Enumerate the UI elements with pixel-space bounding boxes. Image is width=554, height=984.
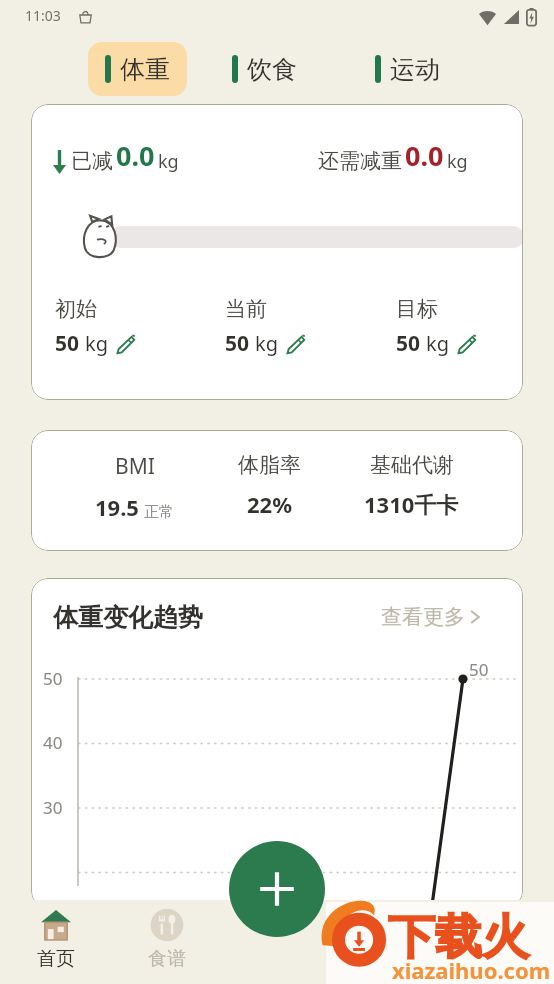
button[interactable]: 基础代谢 [364, 452, 459, 519]
button[interactable]: 体重 [88, 42, 187, 96]
staticText: 30 [43, 796, 63, 819]
staticText: 体脂率 [238, 452, 301, 478]
button[interactable]: 添加记录 [229, 841, 325, 937]
button[interactable]: 查看更多 [381, 604, 481, 630]
button[interactable]: BMI [95, 452, 174, 522]
staticText: 50 [55, 329, 80, 358]
staticText: 饮食 [247, 54, 297, 85]
staticText: 食谱 [148, 947, 186, 971]
staticText: xiazaihuo.com [392, 955, 551, 984]
staticText: 0.0 [405, 137, 444, 174]
staticText: 初始 [55, 296, 97, 322]
staticText: 体重变化趋势 [53, 602, 203, 633]
button[interactable]: 体脂率 [238, 452, 301, 519]
staticText: 已减 [71, 148, 113, 174]
staticText: 查看更多 [381, 604, 465, 630]
staticText: 体重 [120, 54, 170, 85]
staticText: 40 [43, 731, 63, 754]
button[interactable]: 编辑初始 [114, 333, 136, 355]
button[interactable]: 编辑目标 [455, 333, 477, 355]
staticText: kg [158, 149, 179, 174]
staticText: 首页 [37, 947, 75, 971]
button[interactable]: 饮食 [232, 42, 297, 96]
staticText: 11:03 [25, 6, 61, 25]
staticText: kg [447, 149, 468, 174]
button[interactable]: 编辑当前 [284, 333, 306, 355]
staticText: 50 [469, 658, 489, 681]
staticText: 目标 [396, 296, 438, 322]
staticText: 0.0 [116, 137, 155, 174]
staticText: 50 [43, 667, 63, 690]
staticText: 下载火 [388, 908, 529, 967]
staticText: 基础代谢 [370, 452, 454, 478]
button[interactable]: 食谱 [111, 900, 222, 984]
staticText: kg [85, 330, 108, 357]
staticText: kg [426, 330, 449, 357]
staticText: 1310千卡 [364, 489, 459, 519]
staticText: 19.5 [95, 492, 139, 522]
staticText: kg [255, 330, 278, 357]
staticText: 50 [225, 329, 250, 358]
staticText: 运动 [390, 54, 440, 85]
staticText: 当前 [225, 296, 267, 322]
staticText: 还需减重 [318, 148, 402, 174]
staticText: BMI [115, 452, 155, 481]
staticText: 22% [247, 489, 293, 519]
staticText: 50 [396, 329, 421, 358]
button[interactable]: 运动 [375, 42, 440, 96]
staticText: 正常 [144, 503, 174, 522]
button[interactable]: 首页 [0, 900, 111, 984]
